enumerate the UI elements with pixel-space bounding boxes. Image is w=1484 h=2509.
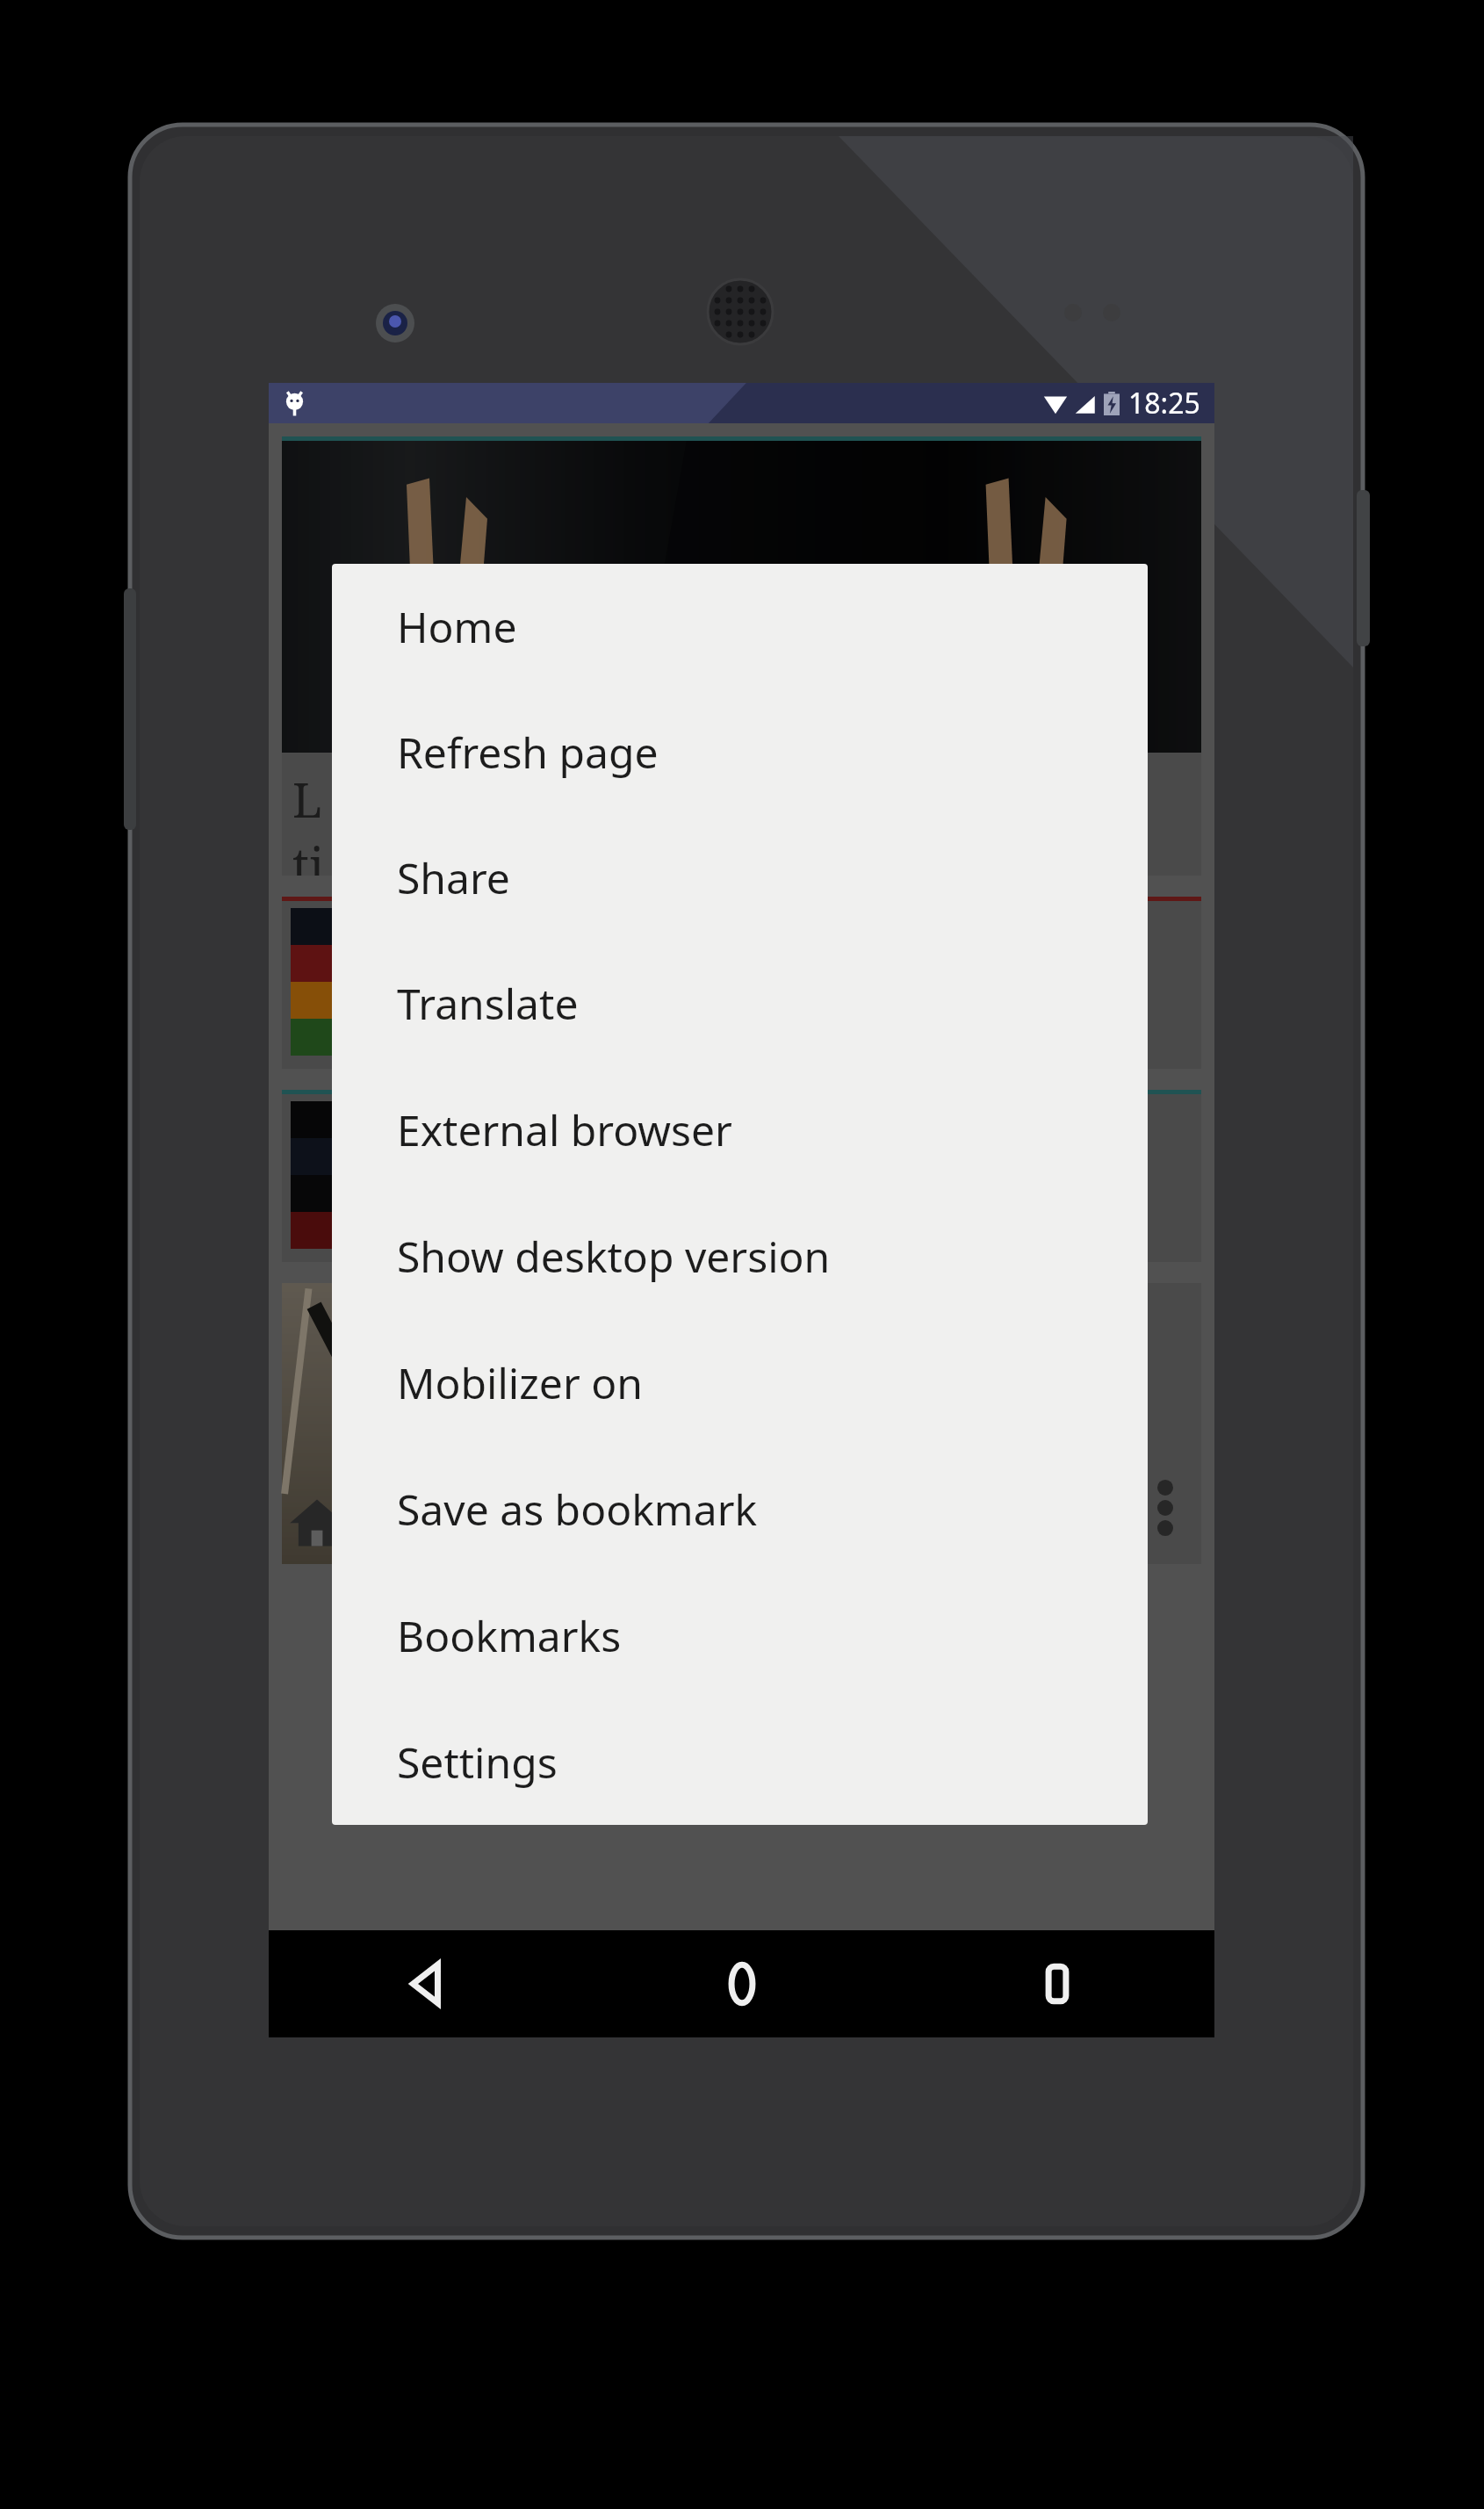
- button[interactable]: Refresh page: [332, 689, 1148, 815]
- button[interactable]: Share: [332, 815, 1148, 941]
- button[interactable]: Settings: [332, 1698, 1148, 1825]
- button[interactable]: Back: [269, 1930, 584, 2037]
- button[interactable]: Save as bookmark: [332, 1446, 1148, 1572]
- staticText: 18:25: [1128, 384, 1200, 422]
- button[interactable]: Translate: [332, 941, 1148, 1066]
- staticText: Bookmarks: [397, 1607, 622, 1664]
- button[interactable]: [282, 1090, 1201, 1262]
- button[interactable]: External browser: [332, 1066, 1148, 1193]
- button[interactable]: Henrik Stenson wins World Tour Champions…: [282, 1283, 1201, 1564]
- staticText: Translate: [397, 975, 579, 1032]
- staticText: ti: [292, 832, 325, 876]
- staticText: Share: [397, 849, 510, 906]
- staticText: Show desktop version: [397, 1228, 831, 1285]
- button[interactable]: More options: [1150, 1476, 1180, 1539]
- button[interactable]: Show desktop version: [332, 1193, 1148, 1319]
- staticText: Henrik Stenson wins World Tour Champions…: [567, 1304, 1127, 1466]
- button[interactable]: [269, 423, 1214, 1930]
- button[interactable]: Mobilizer on: [332, 1319, 1148, 1446]
- button[interactable]: Home: [289, 1494, 345, 1550]
- staticText: Refresh page: [397, 724, 659, 781]
- staticText: Mobilizer on: [397, 1354, 643, 1411]
- button[interactable]: Home: [332, 564, 1148, 689]
- staticText: External browser: [397, 1101, 732, 1158]
- staticText: Home: [397, 598, 517, 655]
- button[interactable]: Recent apps: [899, 1930, 1214, 2037]
- staticText: Settings: [397, 1734, 558, 1791]
- button[interactable]: [282, 897, 1201, 1069]
- button[interactable]: Bookmarks: [332, 1572, 1148, 1698]
- button[interactable]: L: [282, 436, 1201, 876]
- button[interactable]: Home: [584, 1930, 899, 2037]
- staticText: Save as bookmark: [397, 1481, 758, 1538]
- staticText: L: [292, 767, 322, 832]
